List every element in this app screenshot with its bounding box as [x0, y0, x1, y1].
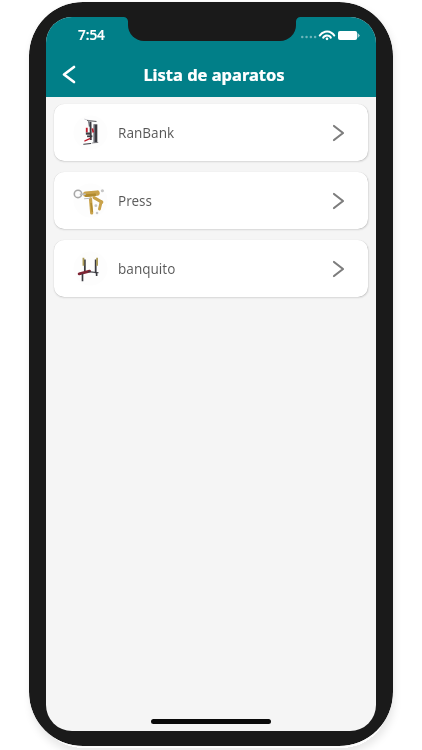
button[interactable]: Back: [48, 53, 90, 95]
staticText: Press: [118, 192, 153, 210]
staticText: banquito: [118, 260, 176, 278]
button[interactable]: RanBank: [54, 104, 368, 161]
staticText: Lista de aparatos: [143, 63, 285, 85]
button[interactable]: Press: [54, 172, 368, 229]
button[interactable]: banquito: [54, 240, 368, 297]
staticText: RanBank: [118, 124, 175, 142]
staticText: 7:54: [78, 26, 105, 44]
